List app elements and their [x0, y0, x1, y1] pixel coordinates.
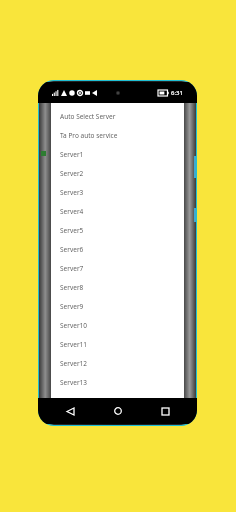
- button[interactable]: Ta Pro auto service: [51, 126, 184, 145]
- button[interactable]: Server5: [51, 221, 184, 240]
- staticText: Server6: [60, 245, 84, 254]
- staticText: Server1: [60, 150, 84, 159]
- button[interactable]: Server8: [51, 278, 184, 297]
- staticText: 6:31: [171, 89, 183, 97]
- button[interactable]: Recent apps: [150, 398, 180, 424]
- staticText: Server3: [60, 188, 84, 197]
- button[interactable]: Home: [103, 398, 133, 424]
- staticText: Ta Pro auto service: [60, 131, 118, 140]
- button[interactable]: Server7: [51, 259, 184, 278]
- staticText: Server2: [60, 169, 84, 178]
- staticText: Server12: [60, 359, 88, 368]
- button[interactable]: Server12: [51, 354, 184, 373]
- staticText: Server8: [60, 283, 84, 292]
- button[interactable]: Server6: [51, 240, 184, 259]
- button[interactable]: Server1: [51, 145, 184, 164]
- button[interactable]: Server13: [51, 373, 184, 392]
- staticText: Server4: [60, 207, 84, 216]
- staticText: Server7: [60, 264, 84, 273]
- staticText: Server5: [60, 226, 84, 235]
- staticText: Auto Select Server: [60, 112, 116, 121]
- button[interactable]: Auto Select Server: [51, 107, 184, 126]
- staticText: Server13: [60, 378, 88, 387]
- button[interactable]: Server3: [51, 183, 184, 202]
- button[interactable]: Server4: [51, 202, 184, 221]
- staticText: Server9: [60, 302, 84, 311]
- staticText: Server10: [60, 321, 88, 330]
- button[interactable]: Server11: [51, 335, 184, 354]
- button[interactable]: Server9: [51, 297, 184, 316]
- staticText: Server11: [60, 340, 88, 349]
- button[interactable]: Server2: [51, 164, 184, 183]
- button[interactable]: Back: [55, 398, 85, 424]
- button[interactable]: Server10: [51, 316, 184, 335]
